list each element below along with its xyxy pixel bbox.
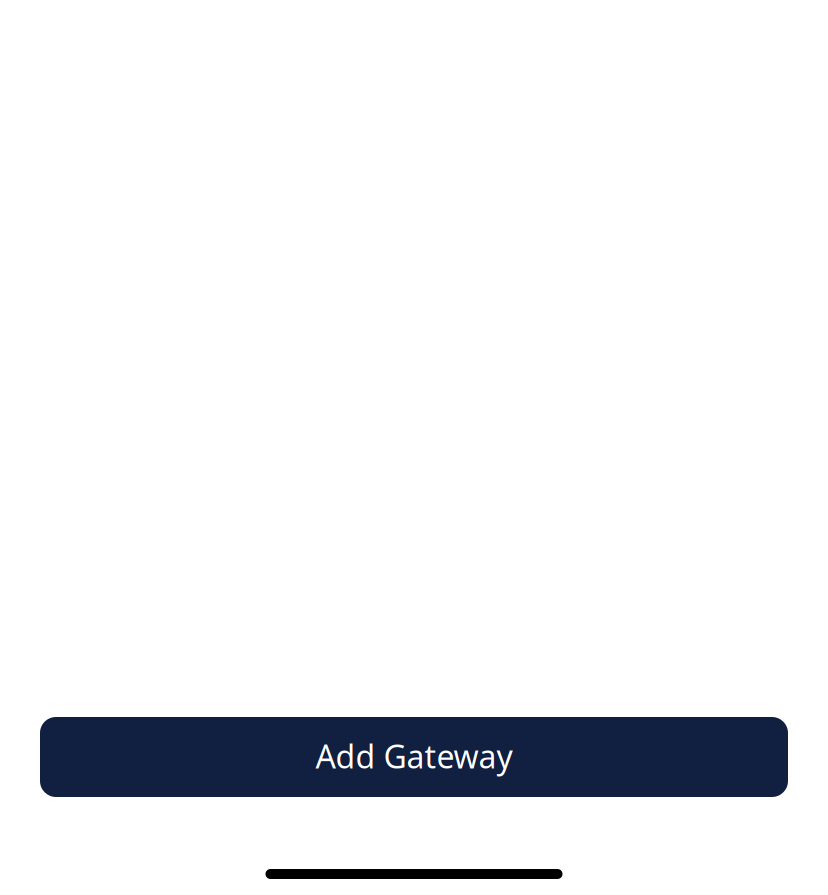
staticText: Add Gateway <box>315 735 512 777</box>
button[interactable]: Add Gateway <box>40 717 788 797</box>
